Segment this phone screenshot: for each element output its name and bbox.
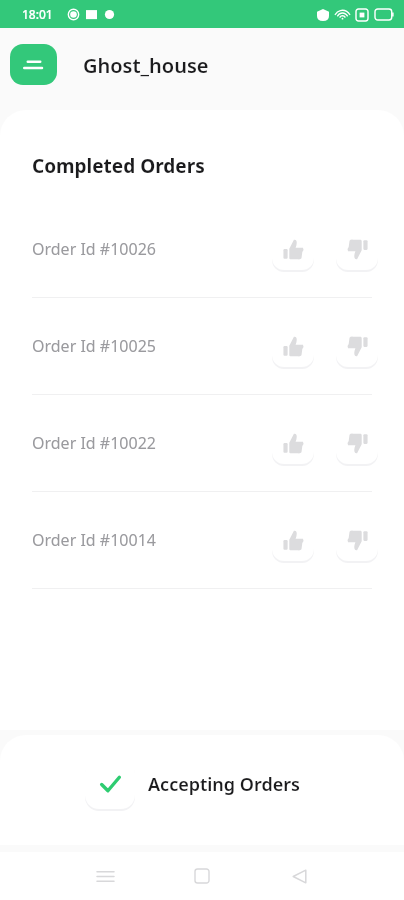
button[interactable]: Thumbs down <box>336 228 378 270</box>
button[interactable]: Thumbs down <box>336 519 378 561</box>
button[interactable]: Thumbs up <box>272 325 314 367</box>
button[interactable]: Thumbs up <box>272 422 314 464</box>
button[interactable]: Thumbs up <box>272 228 314 270</box>
staticText: Completed Orders <box>32 153 205 179</box>
button[interactable]: Order Id #10022 <box>0 395 404 491</box>
button[interactable]: Accepting Orders <box>85 759 300 809</box>
button[interactable]: Menu <box>10 44 57 85</box>
staticText: Order Id #10026 <box>32 238 156 260</box>
button[interactable]: Back <box>282 859 316 893</box>
staticText: Ghost_house <box>83 52 209 79</box>
button[interactable]: Thumbs down <box>336 325 378 367</box>
staticText: 18:01 <box>22 6 53 22</box>
staticText: Order Id #10025 <box>32 335 156 357</box>
staticText: Order Id #10022 <box>32 432 156 454</box>
button[interactable]: Order Id #10026 <box>0 201 404 297</box>
button[interactable]: Home <box>185 859 219 893</box>
button[interactable]: Thumbs down <box>336 422 378 464</box>
staticText: Order Id #10014 <box>32 529 156 551</box>
staticText: Accepting Orders <box>148 772 300 797</box>
button[interactable]: Recents <box>88 859 122 893</box>
button[interactable]: Thumbs up <box>272 519 314 561</box>
button[interactable]: Order Id #10014 <box>0 492 404 588</box>
button[interactable]: Order Id #10025 <box>0 298 404 394</box>
